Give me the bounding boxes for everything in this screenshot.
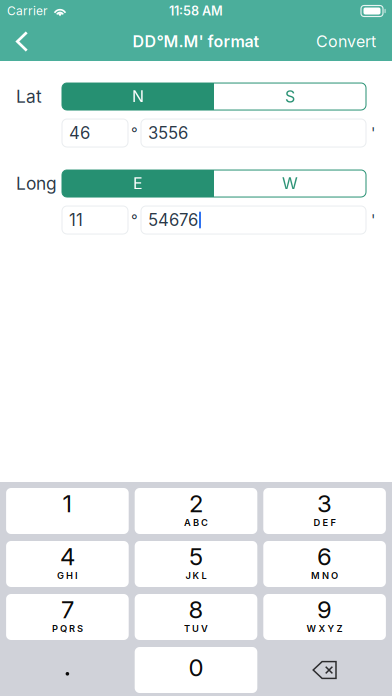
button[interactable]: W	[214, 170, 366, 197]
staticText: 3	[317, 489, 332, 518]
staticText: Carrier	[7, 4, 48, 18]
staticText: DD°M.M' format	[132, 32, 259, 51]
staticText: T U V	[184, 623, 208, 634]
button[interactable]: Convert	[300, 22, 392, 61]
button[interactable]: E	[62, 170, 214, 197]
button[interactable]: Decimal point	[6, 647, 129, 693]
staticText: G H I	[57, 570, 78, 581]
button[interactable]: 7	[6, 594, 129, 640]
staticText: 2	[189, 489, 203, 518]
staticText: 46	[69, 123, 90, 143]
staticText: 3556	[148, 123, 188, 143]
staticText: 9	[317, 595, 332, 624]
button[interactable]: 4	[6, 541, 129, 587]
staticText: M N O	[311, 570, 338, 581]
button[interactable]: 3	[263, 488, 386, 534]
button[interactable]: 5	[135, 541, 257, 587]
staticText: 7	[61, 595, 74, 624]
staticText: W X Y Z	[307, 623, 343, 634]
button[interactable]: Delete	[263, 647, 386, 693]
staticText: 5	[189, 542, 203, 571]
button[interactable]: 2	[135, 488, 257, 534]
button[interactable]: 8	[135, 594, 257, 640]
staticText: W	[282, 174, 298, 193]
staticText: °	[131, 124, 138, 142]
staticText: D E F	[314, 517, 336, 528]
staticText: '	[371, 124, 375, 142]
button[interactable]: 1	[6, 488, 129, 534]
button[interactable]: S	[214, 83, 366, 110]
staticText: 6	[317, 542, 332, 571]
staticText: 11	[69, 210, 83, 230]
button[interactable]: 6	[263, 541, 386, 587]
staticText: 0	[188, 653, 203, 682]
button[interactable]: 3556	[141, 119, 366, 147]
button[interactable]: 0	[135, 647, 257, 693]
staticText: N	[132, 87, 144, 106]
staticText: 54676	[148, 210, 198, 230]
button[interactable]: Back	[0, 22, 44, 61]
staticText: 11:58 AM	[169, 3, 223, 19]
staticText: Lat	[16, 86, 42, 107]
staticText: '	[371, 211, 375, 229]
button[interactable]: 46	[62, 119, 128, 147]
staticText: J K L	[185, 570, 206, 581]
staticText: S	[285, 87, 295, 106]
staticText: A B C	[184, 517, 208, 528]
button[interactable]: 54676	[141, 206, 366, 234]
staticText: 8	[188, 595, 203, 624]
button[interactable]: N	[62, 83, 214, 110]
button[interactable]: 11	[62, 206, 128, 234]
staticText: °	[131, 211, 138, 229]
staticText: P Q R S	[52, 623, 83, 634]
staticText: Convert	[316, 32, 376, 51]
staticText: 4	[60, 542, 75, 571]
staticText: Long	[16, 173, 57, 194]
button[interactable]: 9	[263, 594, 386, 640]
staticText: E	[133, 174, 143, 193]
staticText: 1	[62, 489, 72, 518]
